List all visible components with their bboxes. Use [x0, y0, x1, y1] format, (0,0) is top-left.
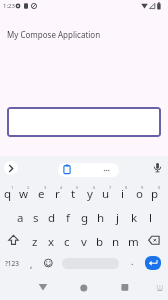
- staticText: v: [81, 234, 87, 250]
- button[interactable]: k: [120, 209, 148, 227]
- staticText: k: [131, 210, 138, 226]
- button[interactable]: t: [59, 185, 87, 203]
- staticText: r: [55, 186, 60, 202]
- button[interactable]: [58, 163, 119, 177]
- staticText: e: [38, 186, 45, 202]
- staticText: q: [4, 186, 12, 202]
- staticText: c: [64, 234, 70, 250]
- button[interactable]: a: [6, 209, 34, 227]
- staticText: 3: [44, 185, 47, 190]
- button[interactable]: l: [136, 209, 164, 227]
- staticText: 4: [60, 185, 63, 190]
- staticText: 7: [109, 185, 112, 190]
- staticText: l: [149, 210, 152, 226]
- staticText: m: [128, 234, 139, 250]
- staticText: 0: [158, 185, 161, 190]
- staticText: d: [48, 210, 56, 226]
- button[interactable]: c: [53, 233, 81, 251]
- staticText: i: [121, 186, 124, 202]
- button[interactable]: q: [0, 185, 22, 203]
- staticText: z: [32, 234, 38, 250]
- staticText: x: [48, 234, 55, 250]
- button[interactable]: r: [43, 185, 71, 203]
- staticText: w: [19, 186, 29, 202]
- button[interactable]: [77, 281, 91, 295]
- button[interactable]: n: [102, 233, 130, 251]
- button[interactable]: x: [37, 233, 65, 251]
- staticText: 2: [27, 185, 30, 190]
- button[interactable]: f: [54, 209, 82, 227]
- staticText: ,: [30, 258, 33, 270]
- button[interactable]: [118, 280, 132, 294]
- staticText: t: [71, 186, 76, 202]
- staticText: h: [97, 210, 105, 226]
- button[interactable]: e: [27, 185, 55, 203]
- button[interactable]: g: [71, 209, 99, 227]
- staticText: 8: [125, 185, 128, 190]
- button[interactable]: i: [108, 185, 136, 203]
- button[interactable]: [36, 280, 50, 294]
- staticText: u: [102, 186, 110, 202]
- staticText: 5: [76, 185, 79, 190]
- staticText: b: [96, 234, 104, 250]
- button[interactable]: u: [92, 185, 120, 203]
- staticText: o: [136, 186, 143, 202]
- staticText: ?123: [5, 259, 19, 268]
- button[interactable]: [4, 161, 18, 175]
- staticText: g: [81, 210, 89, 226]
- button[interactable]: w: [10, 185, 38, 203]
- button[interactable]: m: [119, 233, 147, 251]
- staticText: 1: [11, 185, 14, 190]
- button[interactable]: y: [76, 185, 104, 203]
- button[interactable]: j: [103, 209, 131, 227]
- button[interactable]: v: [70, 233, 98, 251]
- staticText: y: [87, 186, 93, 202]
- staticText: 6: [93, 185, 96, 190]
- staticText: j: [116, 210, 119, 226]
- button[interactable]: d: [38, 209, 66, 227]
- button[interactable]: h: [87, 209, 115, 227]
- staticText: My Compose Application: [7, 29, 101, 40]
- button[interactable]: s: [22, 209, 50, 227]
- button[interactable]: ,: [17, 255, 45, 273]
- button[interactable]: o: [125, 185, 153, 203]
- button[interactable]: .: [118, 252, 146, 270]
- button[interactable]: b: [86, 233, 114, 251]
- staticText: 9: [141, 185, 144, 190]
- button[interactable]: z: [21, 233, 49, 251]
- staticText: f: [66, 210, 70, 226]
- staticText: 1:23: [3, 2, 15, 10]
- button[interactable]: [7, 107, 161, 137]
- button[interactable]: p: [141, 185, 168, 203]
- staticText: n: [112, 234, 120, 250]
- staticText: s: [33, 210, 39, 226]
- staticText: .: [131, 255, 134, 267]
- staticText: p: [151, 186, 159, 202]
- button[interactable]: [145, 256, 161, 270]
- button[interactable]: ?123: [0, 254, 26, 272]
- staticText: a: [17, 210, 24, 226]
